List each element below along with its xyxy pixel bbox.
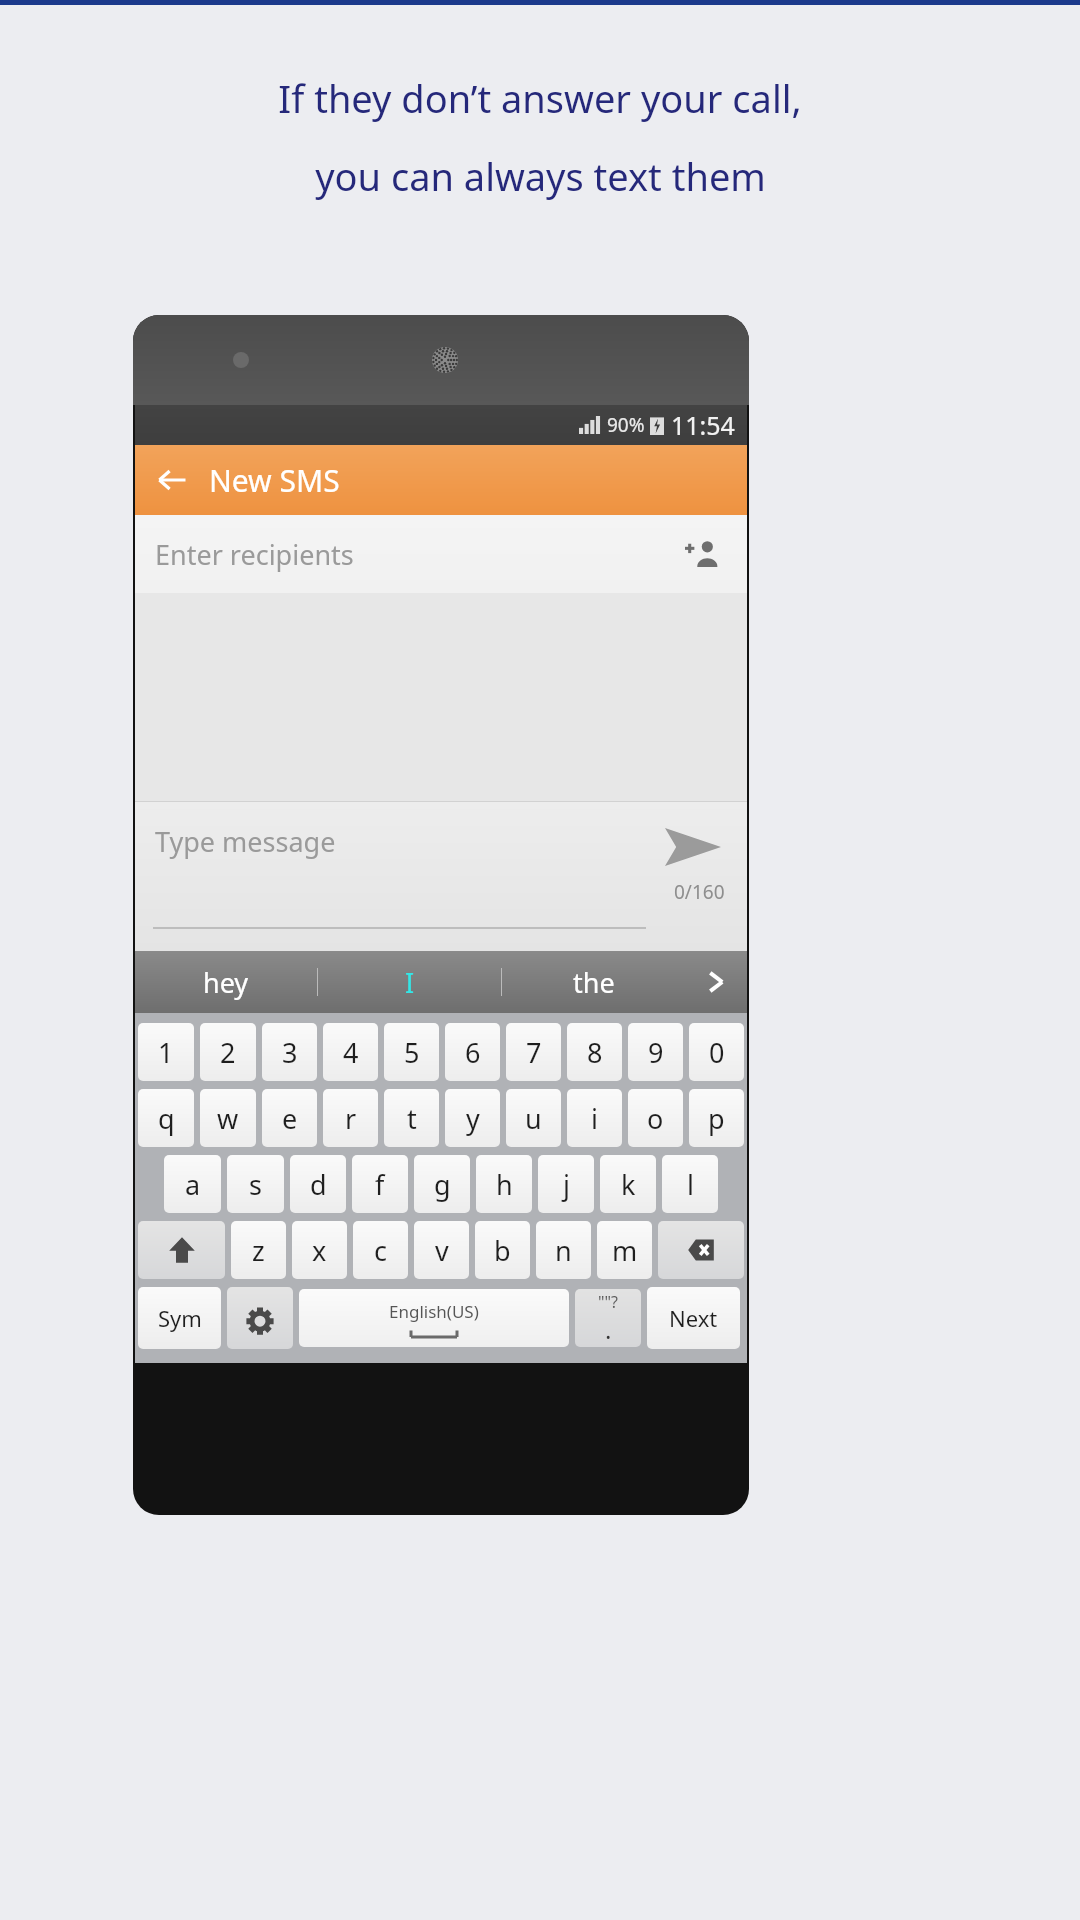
staticText: w [217, 1100, 239, 1137]
button[interactable]: j [538, 1155, 594, 1213]
button[interactable]: 5 [384, 1023, 439, 1081]
staticText: 5 [404, 1034, 420, 1071]
staticText: If they don’t answer your call, [278, 72, 802, 124]
staticText: s [249, 1166, 262, 1203]
button[interactable]: Backspace [658, 1221, 744, 1279]
button[interactable]: 8 [567, 1023, 622, 1081]
staticText: m [612, 1232, 638, 1269]
staticText: h [496, 1166, 513, 1203]
staticText: 2 [220, 1034, 236, 1071]
button[interactable]: y [445, 1089, 500, 1147]
staticText: 8 [587, 1034, 603, 1071]
staticText: p [708, 1100, 725, 1137]
button[interactable]: v [414, 1221, 469, 1279]
staticText: 4 [343, 1034, 359, 1071]
button[interactable]: s [227, 1155, 284, 1213]
button[interactable]: hey [135, 951, 317, 1013]
staticText: g [434, 1166, 451, 1203]
button[interactable]: ""? [575, 1289, 641, 1347]
button[interactable]: 4 [323, 1023, 378, 1081]
button[interactable]: t [384, 1089, 439, 1147]
staticText: f [375, 1166, 385, 1203]
button[interactable]: z [231, 1221, 286, 1279]
staticText: Enter recipients [155, 536, 354, 573]
button[interactable]: r [323, 1089, 378, 1147]
button[interactable]: n [536, 1221, 591, 1279]
staticText: 0 [709, 1034, 725, 1071]
staticText: d [310, 1166, 327, 1203]
button[interactable]: u [506, 1089, 561, 1147]
button[interactable]: Back [135, 445, 209, 515]
staticText: English(US) [389, 1300, 479, 1323]
button[interactable]: o [628, 1089, 683, 1147]
staticText: 90% [607, 412, 645, 438]
button[interactable]: e [262, 1089, 317, 1147]
button[interactable]: b [475, 1221, 530, 1279]
button[interactable]: 3 [262, 1023, 317, 1081]
button[interactable]: w [200, 1089, 256, 1147]
staticText: l [687, 1166, 694, 1203]
staticText: New SMS [209, 460, 340, 501]
staticText: 6 [465, 1034, 481, 1071]
staticText: r [345, 1100, 357, 1137]
staticText: . [605, 1313, 612, 1346]
staticText: x [312, 1232, 327, 1269]
button[interactable]: Shift [138, 1221, 225, 1279]
staticText: u [525, 1100, 542, 1137]
button[interactable]: l [662, 1155, 718, 1213]
button[interactable]: 9 [628, 1023, 683, 1081]
staticText: ""? [598, 1291, 619, 1313]
staticText: o [647, 1100, 664, 1137]
button[interactable]: 1 [138, 1023, 194, 1081]
staticText: the [573, 964, 615, 1001]
button[interactable]: c [353, 1221, 408, 1279]
staticText: i [591, 1100, 598, 1137]
button[interactable]: More suggestions [685, 951, 747, 1013]
staticText: z [252, 1232, 265, 1269]
staticText: 9 [648, 1034, 664, 1071]
button[interactable]: p [689, 1089, 744, 1147]
button[interactable]: 7 [506, 1023, 561, 1081]
button[interactable]: Settings [227, 1287, 293, 1349]
staticText: b [494, 1232, 511, 1269]
button[interactable]: a [164, 1155, 221, 1213]
staticText: y [466, 1100, 480, 1137]
staticText: a [185, 1166, 201, 1203]
staticText: q [158, 1100, 175, 1137]
button[interactable]: Send [661, 815, 725, 879]
button[interactable]: Add recipient [681, 532, 725, 576]
staticText: hey [203, 964, 249, 1001]
staticText: 7 [526, 1034, 542, 1071]
button[interactable]: Sym [138, 1287, 221, 1349]
staticText: e [282, 1100, 298, 1137]
staticText: c [374, 1232, 387, 1269]
button[interactable]: f [352, 1155, 408, 1213]
button[interactable]: Enter recipients [135, 515, 747, 593]
button[interactable]: g [414, 1155, 470, 1213]
button[interactable]: h [476, 1155, 532, 1213]
staticText: 11:54 [671, 408, 735, 442]
staticText: Next [669, 1303, 718, 1333]
button[interactable]: Next [647, 1287, 740, 1349]
staticText: 1 [158, 1034, 174, 1071]
staticText: j [563, 1166, 570, 1203]
button[interactable]: k [600, 1155, 656, 1213]
button[interactable]: 0 [689, 1023, 744, 1081]
button[interactable]: 2 [200, 1023, 256, 1081]
staticText: v [435, 1232, 449, 1269]
button[interactable]: the [502, 951, 685, 1013]
staticText: Type message [155, 823, 336, 860]
staticText: I [405, 964, 415, 1001]
staticText: n [555, 1232, 572, 1269]
button[interactable]: d [290, 1155, 346, 1213]
button[interactable]: m [597, 1221, 652, 1279]
button[interactable]: x [292, 1221, 347, 1279]
button[interactable]: i [567, 1089, 622, 1147]
button[interactable]: q [138, 1089, 194, 1147]
staticText: Sym [158, 1303, 202, 1333]
button[interactable]: I [318, 951, 501, 1013]
button[interactable]: English(US) [299, 1289, 569, 1347]
staticText: 0/160 [674, 879, 725, 905]
button[interactable]: 6 [445, 1023, 500, 1081]
staticText: k [621, 1166, 636, 1203]
